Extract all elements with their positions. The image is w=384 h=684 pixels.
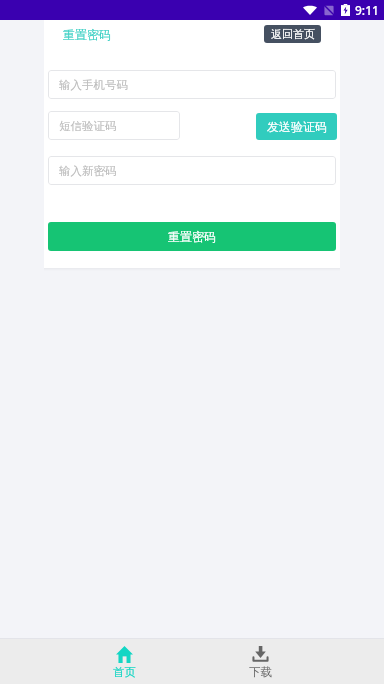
staticText: 重置密码 (168, 229, 216, 244)
staticText: 输入新密码 (59, 164, 117, 178)
button[interactable]: Download (192, 639, 328, 684)
staticText: 下载 (249, 665, 272, 679)
staticText: 重置密码 (63, 27, 111, 42)
staticText: 9:11 (355, 2, 379, 18)
staticText: 首页 (113, 665, 136, 679)
button[interactable]: 短信验证码 (48, 111, 180, 140)
staticText: 短信验证码 (59, 119, 117, 133)
staticText: 发送验证码 (267, 119, 327, 134)
button[interactable]: 输入手机号码 (48, 70, 336, 99)
other: Download (252, 646, 269, 663)
staticText: 返回首页 (271, 27, 315, 41)
button[interactable]: Home (56, 639, 192, 684)
button[interactable]: 返回首页 (264, 25, 321, 43)
button[interactable]: 输入新密码 (48, 156, 336, 185)
button[interactable]: 发送验证码 (256, 113, 337, 140)
other: Home (116, 646, 133, 663)
staticText: 输入手机号码 (59, 78, 128, 92)
button[interactable]: 重置密码 (48, 222, 336, 251)
